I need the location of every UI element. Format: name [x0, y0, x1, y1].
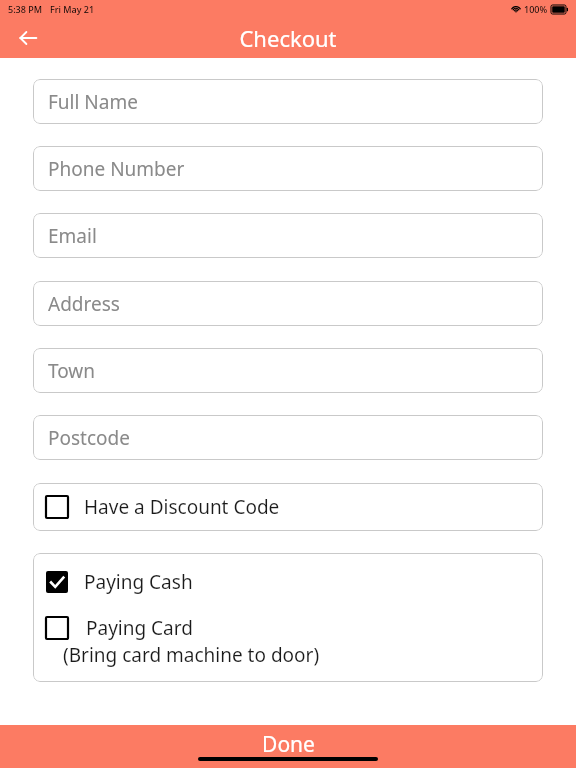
button[interactable]: Postcode: [33, 415, 543, 460]
button[interactable]: Town: [33, 348, 543, 393]
staticText: Phone Number: [48, 156, 185, 182]
staticText: (Bring card machine to door): [63, 642, 320, 668]
button[interactable]: Full Name: [33, 79, 543, 124]
button[interactable]: Phone Number: [33, 146, 543, 191]
button[interactable]: Have a Discount Code: [33, 483, 543, 531]
staticText: Town: [48, 358, 96, 384]
button[interactable]: Done: [0, 725, 576, 768]
staticText: Paying Cash: [84, 569, 193, 595]
staticText: Email: [48, 223, 97, 249]
staticText: 5:38 PM: [8, 3, 42, 15]
staticText: Address: [48, 291, 120, 317]
staticText: Checkout: [239, 23, 337, 53]
staticText: Have a Discount Code: [84, 494, 280, 520]
staticText: Postcode: [48, 425, 130, 451]
staticText: Full Name: [48, 89, 138, 115]
staticText: 100%: [524, 3, 548, 15]
button[interactable]: Back: [8, 18, 48, 58]
staticText: Done: [262, 730, 315, 759]
button[interactable]: Address: [33, 281, 543, 326]
button[interactable]: Paying Card: [33, 615, 543, 670]
staticText: Paying Card: [86, 615, 193, 641]
staticText: Fri May 21: [50, 3, 95, 15]
button[interactable]: Paying Cash: [33, 565, 543, 599]
button[interactable]: Email: [33, 213, 543, 258]
